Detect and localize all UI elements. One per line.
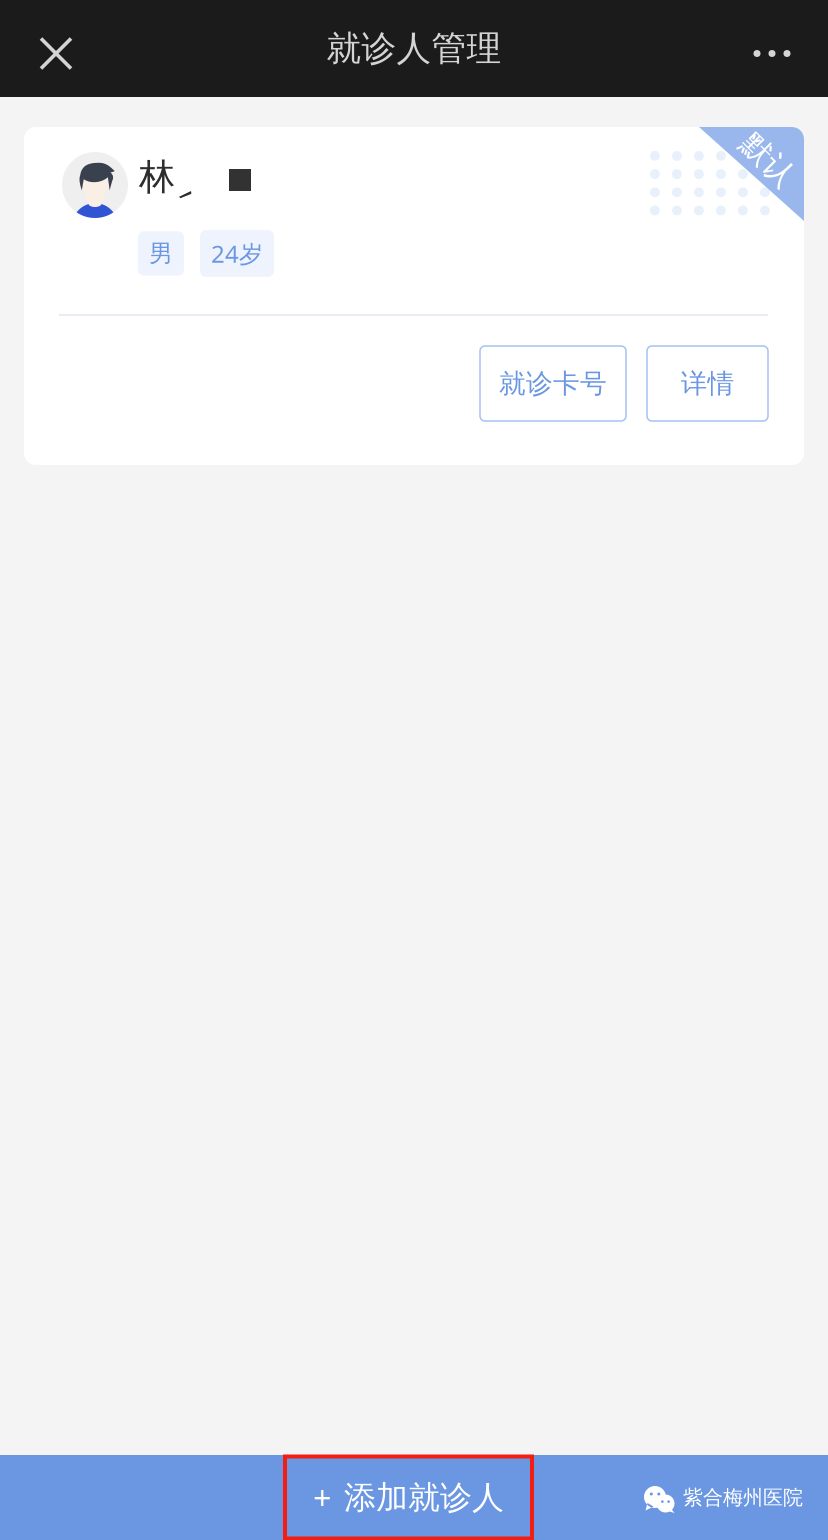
staticText: 24岁: [211, 237, 263, 269]
staticText: +: [313, 1476, 331, 1519]
button[interactable]: 详情: [647, 346, 768, 421]
button[interactable]: More options: [716, 0, 828, 97]
staticText: 就诊卡号: [499, 367, 607, 400]
button[interactable]: Close: [0, 0, 112, 97]
staticText: 紫合梅州医院: [683, 1485, 803, 1510]
button[interactable]: 紫合梅州医院: [630, 1455, 828, 1540]
staticText: 添加就诊人: [344, 1478, 504, 1517]
staticText: 男: [149, 239, 173, 268]
button[interactable]: 就诊卡号: [480, 346, 626, 421]
staticText: 林: [139, 155, 175, 199]
staticText: 就诊人管理: [326, 27, 501, 70]
button[interactable]: +: [285, 1456, 532, 1538]
staticText: 默认: [737, 141, 799, 179]
staticText: 详情: [680, 367, 734, 400]
